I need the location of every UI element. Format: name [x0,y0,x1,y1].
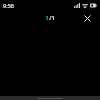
staticText: /1 [49,14,55,22]
button[interactable]: 1 [42,13,58,23]
staticText: 9:56 [3,2,14,9]
staticText: 1 [45,14,49,22]
button[interactable]: Close [81,12,93,24]
